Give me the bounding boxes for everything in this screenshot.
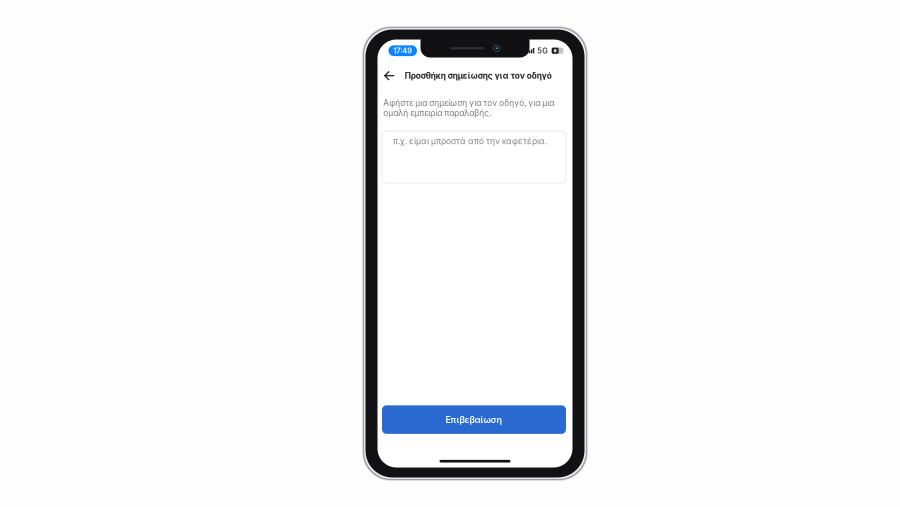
staticText: 5G <box>537 46 548 55</box>
staticText: 17:49 <box>393 46 412 55</box>
button[interactable]: π.χ. είμαι μπροστά από την καφετέρια. <box>382 131 566 183</box>
button[interactable]: Επιβεβαίωση <box>382 405 566 434</box>
staticText: π.χ. είμαι μπροστά από την καφετέρια. <box>393 136 547 146</box>
button[interactable]: Προσθήκη σημείωσης για τον οδηγό <box>377 62 572 89</box>
staticText: Προσθήκη σημείωσης για τον οδηγό <box>405 71 552 81</box>
staticText: Αφήστε μια σημείωση για τον οδηγό, για μ… <box>383 98 554 118</box>
staticText: Επιβεβαίωση <box>445 414 502 425</box>
